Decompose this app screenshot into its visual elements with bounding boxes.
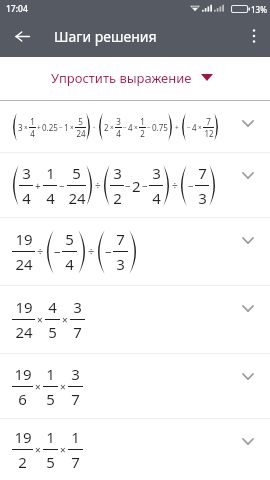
staticText: − <box>59 123 63 132</box>
staticText: 5 <box>72 163 81 183</box>
staticText: 4 <box>152 188 161 208</box>
staticText: 2 <box>18 452 27 472</box>
button[interactable]: 19 <box>0 419 270 480</box>
other: Expand <box>242 438 254 445</box>
staticText: Шаги решения <box>54 27 157 46</box>
staticText: 4 <box>192 122 197 133</box>
other: Expand <box>242 237 254 244</box>
staticText: 1 <box>46 163 55 183</box>
staticText: × <box>134 123 138 132</box>
staticText: 2 <box>113 188 122 208</box>
staticText: 3 <box>116 116 121 127</box>
staticText: − <box>54 244 61 260</box>
staticText: × <box>62 313 68 327</box>
staticText: − <box>105 244 112 260</box>
staticText: 1 <box>30 116 35 127</box>
staticText: 0.75 <box>152 122 168 133</box>
staticText: × <box>35 443 41 457</box>
staticText: − <box>147 123 151 132</box>
staticText: × <box>60 380 66 394</box>
staticText: 3 <box>18 122 23 133</box>
other: Expand <box>242 373 254 380</box>
staticText: − <box>125 179 131 193</box>
staticText: 3 <box>116 254 125 274</box>
staticText: 7 <box>71 452 80 472</box>
other: Expand <box>242 120 254 127</box>
button[interactable]: 3 <box>0 101 270 152</box>
staticText: + <box>37 123 41 132</box>
staticText: Упростить выражение <box>51 69 192 87</box>
staticText: × <box>110 123 114 132</box>
staticText: 4 <box>128 122 133 133</box>
staticText: 7 <box>116 229 125 249</box>
button[interactable]: More options <box>242 24 265 47</box>
staticText: 7 <box>73 322 82 342</box>
staticText: × <box>24 123 28 132</box>
staticText: 4 <box>30 128 35 139</box>
staticText: 3 <box>198 188 207 208</box>
staticText: 2 <box>104 122 109 133</box>
staticText: 3 <box>113 163 122 183</box>
staticText: + <box>35 179 41 193</box>
staticText: 2 <box>140 128 145 139</box>
staticText: 3 <box>73 297 82 317</box>
staticText: 24 <box>68 188 86 208</box>
staticText: 1 <box>140 116 145 127</box>
staticText: 7 <box>71 389 80 409</box>
staticText: 5 <box>78 116 83 127</box>
staticText: 3 <box>71 364 80 384</box>
staticText: 4 <box>48 297 57 317</box>
staticText: 5 <box>65 229 74 249</box>
staticText: 6 <box>18 389 27 409</box>
staticText: − <box>188 179 194 193</box>
staticText: 2 <box>132 176 141 196</box>
other: Expand <box>242 172 254 179</box>
staticText: 0.25 <box>42 122 58 133</box>
button[interactable]: 19 <box>0 286 270 353</box>
staticText: + <box>175 123 179 132</box>
staticText: 5 <box>46 452 55 472</box>
staticText: 12 <box>204 128 214 139</box>
staticText: × <box>35 380 41 394</box>
button[interactable]: 3 <box>0 153 270 217</box>
staticText: · <box>93 122 96 133</box>
button[interactable]: Back <box>10 24 34 48</box>
staticText: 4 <box>65 254 74 274</box>
staticText: 17:04 <box>6 3 28 15</box>
staticText: 4 <box>46 188 55 208</box>
staticText: ÷ <box>88 244 95 259</box>
staticText: 1 <box>71 427 80 447</box>
staticText: − <box>123 123 127 132</box>
staticText: × <box>37 313 43 327</box>
staticText: 3 <box>22 163 31 183</box>
staticText: 24 <box>76 128 86 139</box>
staticText: 1 <box>64 122 69 133</box>
staticText: 13% <box>251 4 267 15</box>
staticText: 4 <box>22 188 31 208</box>
button[interactable]: Упростить выражение <box>0 57 270 100</box>
other: Expand <box>242 305 254 312</box>
staticText: − <box>59 179 65 193</box>
staticText: 7 <box>198 163 207 183</box>
staticText: − <box>142 179 148 193</box>
staticText: ÷ <box>37 244 44 259</box>
staticText: ÷ <box>95 179 101 193</box>
button[interactable]: 19 <box>0 354 270 418</box>
staticText: × <box>70 123 74 132</box>
staticText: 24 <box>15 254 33 274</box>
staticText: 1 <box>46 364 55 384</box>
button[interactable]: 19 <box>0 218 270 285</box>
staticText: × <box>198 123 202 132</box>
staticText: 5 <box>46 389 55 409</box>
staticText: 3 <box>152 163 161 183</box>
staticText: ÷ <box>172 179 178 193</box>
staticText: 4 <box>116 128 121 139</box>
staticText: 24 <box>15 322 33 342</box>
staticText: × <box>60 443 66 457</box>
staticText: − <box>187 123 191 132</box>
staticText: 5 <box>48 322 57 342</box>
staticText: 19 <box>15 229 33 249</box>
staticText: 19 <box>15 297 33 317</box>
staticText: 7 <box>206 116 211 127</box>
staticText: 19 <box>14 427 32 447</box>
